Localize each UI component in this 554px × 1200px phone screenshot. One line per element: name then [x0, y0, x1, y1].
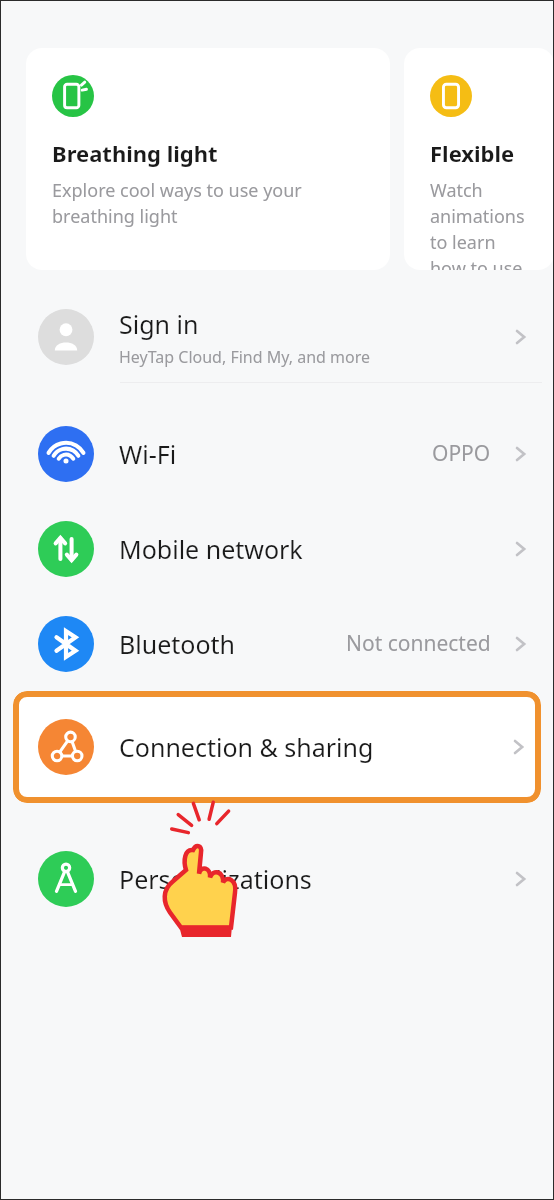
staticText: Breathing light [52, 138, 218, 168]
button[interactable]: Personalizations [0, 831, 554, 926]
staticText: HeyTap Cloud, Find My, and more [119, 346, 371, 368]
staticText: Explore cool ways to use your breathing … [52, 178, 302, 229]
staticText: Sign in [119, 307, 199, 341]
button[interactable]: Wi-Fi [0, 406, 554, 501]
staticText: Wi-Fi [119, 437, 177, 471]
staticText: Mobile network [119, 532, 303, 566]
button[interactable]: Sign in [0, 292, 554, 382]
button[interactable]: Flexible window [404, 48, 554, 270]
button[interactable]: Mobile network [0, 501, 554, 596]
staticText: Flexible window [430, 138, 540, 168]
staticText: Bluetooth [119, 627, 236, 661]
button[interactable]: Connection & sharing [13, 691, 541, 803]
staticText: Personalizations [119, 862, 312, 896]
staticText: Not connected [346, 629, 491, 658]
staticText: OPPO [432, 439, 491, 468]
button[interactable]: Bluetooth [0, 596, 554, 691]
staticText: Connection & sharing [119, 730, 503, 764]
button[interactable]: Breathing light [26, 48, 390, 270]
staticText: Watch animations to learn how to use fle… [430, 178, 540, 270]
